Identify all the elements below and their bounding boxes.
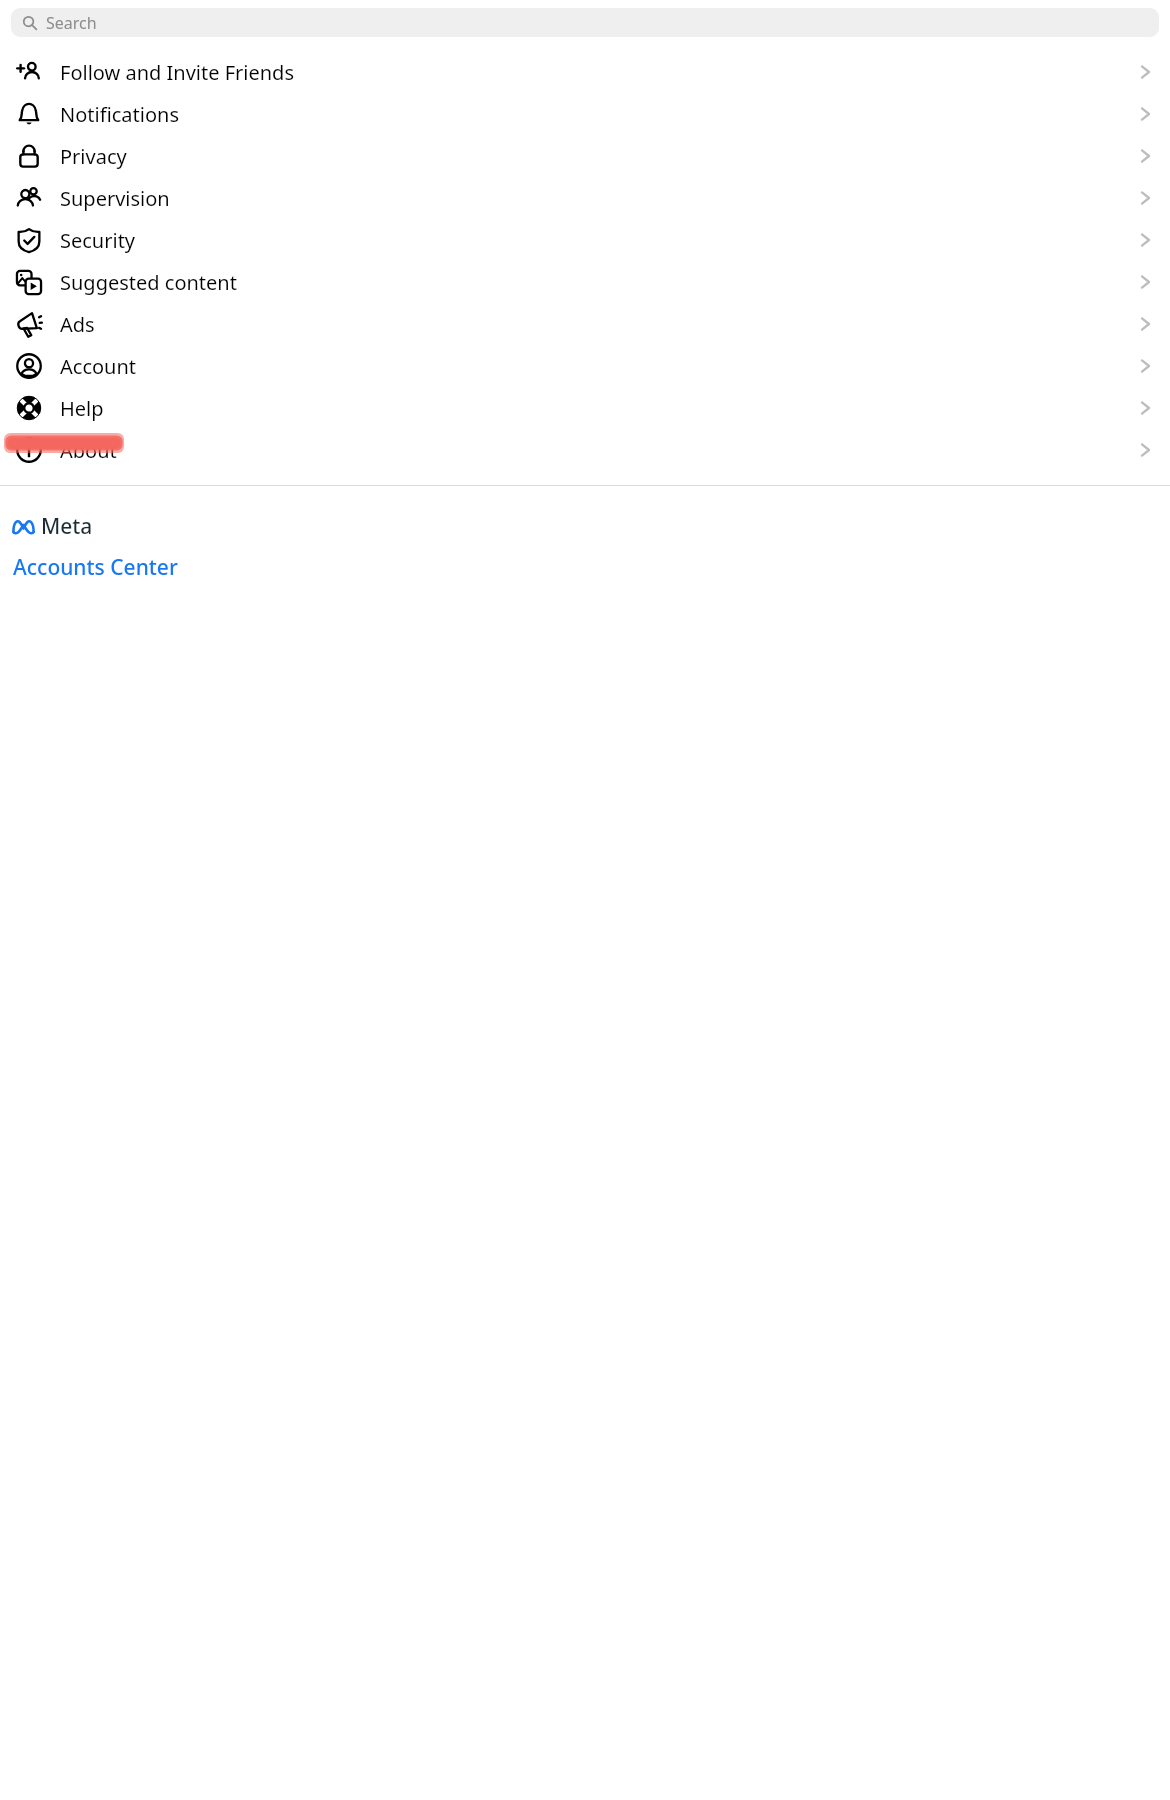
staticText: Search (46, 12, 97, 34)
staticText: Meta (41, 512, 93, 541)
button[interactable]: Ads (0, 303, 1170, 345)
staticText: Ads (60, 311, 95, 338)
staticText: Privacy (60, 143, 127, 170)
staticText: Supervision (60, 185, 170, 212)
button[interactable]: Accounts Center (13, 553, 178, 582)
button[interactable]: Search (11, 8, 1159, 37)
button[interactable]: Suggested content (0, 261, 1170, 303)
staticText: Accounts Center (13, 553, 178, 582)
button[interactable]: Notifications (0, 93, 1170, 135)
staticText: Security (60, 227, 136, 254)
button[interactable]: Account (0, 345, 1170, 387)
staticText: About (60, 437, 117, 464)
button[interactable]: Follow and Invite Friends (0, 51, 1170, 93)
button[interactable]: Privacy (0, 135, 1170, 177)
button[interactable]: Help (0, 387, 1170, 429)
staticText: Follow and Invite Friends (60, 59, 294, 86)
staticText: Notifications (60, 101, 179, 128)
button[interactable]: Security (0, 219, 1170, 261)
button[interactable]: Meta (13, 512, 93, 541)
staticText: Account (60, 353, 137, 380)
staticText: Suggested content (60, 269, 237, 296)
staticText: Help (60, 395, 104, 422)
button[interactable]: Supervision (0, 177, 1170, 219)
button[interactable]: About (0, 429, 1170, 471)
